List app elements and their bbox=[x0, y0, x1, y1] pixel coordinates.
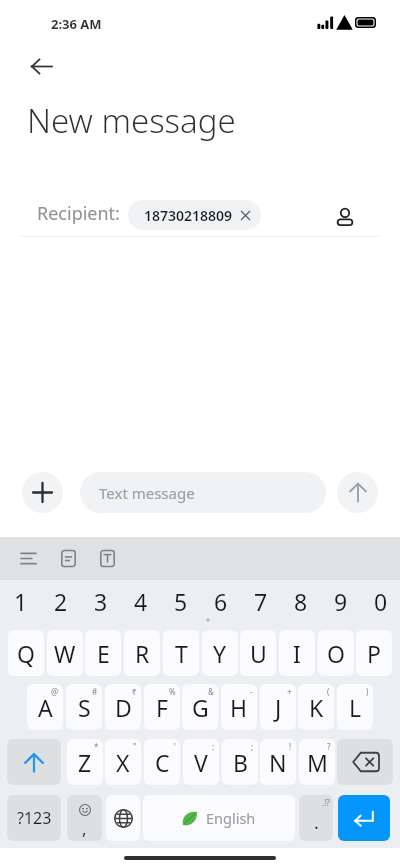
button[interactable]: 1 bbox=[1, 580, 41, 622]
button[interactable]: Text message bbox=[80, 472, 326, 513]
button[interactable]: 6 bbox=[201, 580, 241, 622]
button[interactable]: 3 bbox=[81, 580, 121, 622]
button[interactable]: P bbox=[356, 630, 392, 676]
staticText: H bbox=[230, 692, 248, 723]
staticText: X bbox=[116, 747, 130, 778]
button[interactable]: Choose contact bbox=[328, 200, 362, 234]
button[interactable]: Back bbox=[26, 51, 56, 81]
button[interactable]: Change keyboard language bbox=[106, 795, 140, 841]
staticText: 1 bbox=[14, 586, 28, 617]
staticText: V bbox=[194, 747, 208, 778]
button[interactable]: Menu bbox=[11, 537, 46, 580]
button[interactable]: X bbox=[105, 739, 141, 785]
button[interactable]: 9 bbox=[321, 580, 361, 622]
staticText: 3 bbox=[94, 586, 108, 617]
staticText: 0 bbox=[374, 586, 388, 617]
button[interactable]: L bbox=[337, 684, 373, 730]
button[interactable]: Clipboard bbox=[51, 537, 86, 580]
staticText: ? bbox=[327, 741, 331, 752]
staticText: 18730218809 bbox=[144, 206, 233, 225]
button[interactable]: Period bbox=[299, 795, 333, 841]
button[interactable]: Text editing bbox=[90, 537, 125, 580]
button[interactable]: 2 bbox=[41, 580, 81, 622]
button[interactable]: Z bbox=[67, 739, 103, 785]
button[interactable]: A bbox=[27, 684, 63, 730]
staticText: Text message bbox=[99, 483, 195, 503]
staticText: F bbox=[156, 692, 168, 723]
staticText: English bbox=[206, 808, 256, 828]
button[interactable]: M bbox=[299, 739, 335, 785]
staticText: W bbox=[54, 638, 76, 669]
button[interactable]: 0 bbox=[361, 580, 400, 622]
button[interactable]: Send bbox=[337, 472, 378, 513]
staticText: @ bbox=[51, 686, 59, 697]
button[interactable]: ?123 bbox=[7, 795, 61, 841]
button[interactable]: 7 bbox=[241, 580, 281, 622]
staticText: U bbox=[250, 638, 267, 669]
staticText: " bbox=[133, 741, 137, 752]
button[interactable]: E bbox=[85, 630, 121, 676]
staticText: 9 bbox=[334, 586, 348, 617]
staticText: ₹ bbox=[132, 686, 137, 697]
staticText: Recipient: bbox=[37, 201, 120, 226]
button[interactable]: T bbox=[163, 630, 199, 676]
button[interactable]: J bbox=[260, 684, 296, 730]
button[interactable]: D bbox=[105, 684, 141, 730]
staticText: # bbox=[92, 686, 98, 697]
button[interactable]: F bbox=[144, 684, 180, 730]
staticText: Q bbox=[17, 638, 35, 669]
button[interactable]: O bbox=[318, 630, 354, 676]
staticText: P bbox=[367, 638, 381, 669]
staticText: % bbox=[169, 686, 176, 697]
button[interactable]: R bbox=[124, 630, 160, 676]
staticText: Y bbox=[213, 638, 227, 669]
button[interactable]: C bbox=[144, 739, 180, 785]
staticText: A bbox=[38, 692, 53, 723]
staticText: T bbox=[175, 638, 188, 669]
button[interactable]: Emoji bbox=[67, 795, 102, 841]
button[interactable]: B bbox=[222, 739, 258, 785]
staticText: ?123 bbox=[17, 807, 52, 829]
staticText: ! bbox=[289, 741, 292, 752]
staticText: 6 bbox=[214, 586, 228, 617]
button[interactable]: U bbox=[240, 630, 276, 676]
button[interactable]: 5 bbox=[161, 580, 201, 622]
button[interactable]: Add attachment bbox=[22, 472, 63, 513]
button[interactable]: Q bbox=[8, 630, 44, 676]
staticText: * bbox=[94, 741, 99, 752]
button[interactable]: English bbox=[143, 795, 295, 841]
button[interactable]: Backspace bbox=[337, 739, 393, 785]
button[interactable]: W bbox=[47, 630, 83, 676]
staticText: 8 bbox=[294, 586, 308, 617]
button[interactable]: 4 bbox=[121, 580, 161, 622]
staticText: . bbox=[314, 810, 319, 835]
staticText: : bbox=[212, 741, 215, 752]
button[interactable]: S bbox=[66, 684, 102, 730]
button[interactable]: K bbox=[298, 684, 334, 730]
staticText: M bbox=[307, 747, 328, 778]
staticText: E bbox=[97, 638, 110, 669]
button[interactable]: 8 bbox=[281, 580, 321, 622]
button[interactable]: Y bbox=[202, 630, 238, 676]
staticText: 2 bbox=[54, 586, 68, 617]
button[interactable]: G bbox=[182, 684, 218, 730]
staticText: K bbox=[309, 692, 324, 723]
staticText: .!? bbox=[322, 797, 330, 808]
staticText: & bbox=[208, 686, 214, 697]
staticText: New message bbox=[27, 98, 236, 143]
staticText: S bbox=[78, 692, 91, 723]
staticText: J bbox=[275, 692, 282, 723]
staticText: L bbox=[349, 692, 362, 723]
staticText: ) bbox=[366, 686, 369, 697]
staticText: + bbox=[287, 686, 292, 697]
button[interactable]: V bbox=[183, 739, 219, 785]
staticText: 4 bbox=[134, 586, 148, 617]
staticText: ; bbox=[251, 741, 254, 752]
button[interactable]: N bbox=[260, 739, 296, 785]
button[interactable]: Shift bbox=[7, 739, 61, 785]
button[interactable]: I bbox=[279, 630, 315, 676]
staticText: , bbox=[82, 817, 87, 840]
button[interactable]: 18730218809 bbox=[128, 200, 261, 230]
button[interactable]: Enter bbox=[338, 795, 390, 841]
button[interactable]: H bbox=[221, 684, 257, 730]
